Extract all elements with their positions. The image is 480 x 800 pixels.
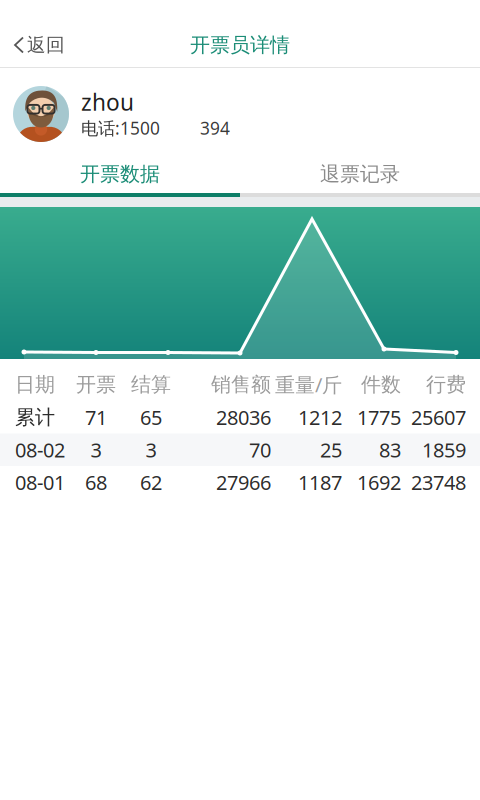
button[interactable]: 开票数据	[0, 150, 240, 197]
staticText: 累计	[15, 405, 55, 430]
staticText: 开票员详情	[190, 33, 290, 57]
staticText: 日期	[15, 372, 55, 397]
staticText: 返回	[27, 33, 65, 56]
staticText: 65	[140, 404, 162, 431]
staticText: 71	[85, 404, 107, 431]
staticText: 退票记录	[320, 162, 400, 186]
staticText: 25	[320, 436, 342, 463]
staticText: 1775	[357, 404, 401, 431]
staticText: 1692	[357, 469, 401, 496]
staticText: zhou	[81, 87, 134, 117]
staticText: 1187	[298, 469, 342, 496]
staticText: 70	[249, 436, 271, 463]
button[interactable]: 退票记录	[240, 150, 480, 197]
staticText: 行费	[426, 372, 466, 397]
staticText: 68	[85, 469, 107, 496]
staticText: 62	[140, 469, 162, 496]
staticText: 1212	[298, 404, 342, 431]
staticText: 开票	[76, 372, 116, 397]
staticText: 28036	[216, 404, 271, 431]
staticText: 25607	[411, 404, 466, 431]
staticText: 销售额	[211, 372, 271, 397]
staticText: 1859	[422, 436, 466, 463]
staticText: 电话:1500	[81, 116, 160, 139]
staticText: 83	[379, 436, 401, 463]
staticText: 3	[145, 436, 156, 463]
staticText: 23748	[411, 469, 466, 496]
staticText: 件数	[361, 372, 401, 397]
staticText: 08-02	[15, 436, 65, 463]
button[interactable]: 返回	[0, 22, 77, 68]
staticText: 394	[200, 116, 230, 139]
staticText: 重量/斤	[275, 371, 342, 398]
staticText: 结算	[131, 372, 171, 397]
staticText: 27966	[216, 469, 271, 496]
staticText: 3	[90, 436, 101, 463]
staticText: 08-01	[15, 469, 65, 496]
staticText: 开票数据	[80, 162, 160, 186]
